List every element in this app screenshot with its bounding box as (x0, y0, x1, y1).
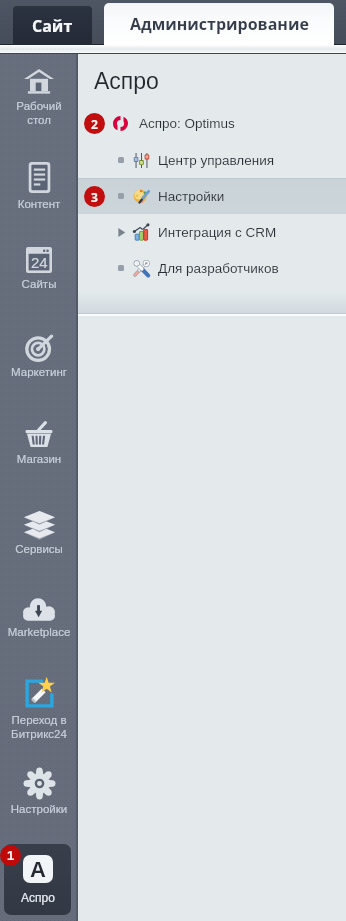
button[interactable]: Для разработчиков (78, 250, 346, 286)
button[interactable]: Администрирование (104, 3, 334, 45)
button[interactable]: Маркетинг (0, 334, 78, 379)
button[interactable]: Сайт (13, 6, 92, 45)
other: Рабочий стол (24, 68, 54, 95)
button[interactable]: Переход в Битрикс24 (0, 678, 78, 741)
staticText: Сайты (2, 278, 76, 291)
staticText: Администрирование (130, 13, 309, 35)
staticText: Для разработчиков (158, 261, 279, 276)
staticText: Рабочий стол (2, 100, 76, 127)
staticText: Сайт (32, 15, 73, 37)
button[interactable]: 2 (78, 105, 346, 141)
staticText: Маркетинг (2, 366, 76, 379)
button[interactable]: Настройки (0, 769, 78, 816)
other: Сервисы (24, 510, 55, 538)
staticText: Аспро: Optimus (139, 116, 235, 131)
button[interactable]: Сайты (0, 247, 78, 291)
button[interactable]: Центр управления (78, 142, 346, 178)
other: Маркетинг (26, 334, 53, 361)
button[interactable]: Marketplace (0, 598, 78, 639)
other: Переход в Битрикс24 (24, 678, 55, 709)
staticText: Контент (2, 198, 76, 211)
button[interactable]: Рабочий стол (0, 68, 78, 127)
staticText: Интеграция с CRM (158, 225, 277, 240)
staticText: A (30, 857, 46, 882)
button[interactable]: Сервисы (0, 510, 78, 556)
other: Настройки (25, 769, 54, 798)
button[interactable]: Интеграция с CRM (78, 214, 346, 250)
other: Контент (26, 162, 53, 193)
button[interactable]: A (4, 844, 71, 915)
other: Магазин (25, 421, 53, 448)
other: Marketplace (23, 598, 55, 621)
button[interactable]: Магазин (0, 421, 78, 466)
staticText: Сервисы (2, 543, 76, 556)
staticText: 2 (91, 116, 98, 132)
staticText: Центр управления (158, 153, 275, 168)
other: Сайты (26, 247, 52, 273)
staticText: Настройки (2, 803, 76, 816)
staticText: Аспро (94, 68, 159, 94)
staticText: 3 (91, 189, 98, 205)
button[interactable]: 3 (78, 178, 346, 214)
staticText: Аспро (21, 891, 55, 904)
staticText: Переход в Битрикс24 (2, 714, 76, 741)
button[interactable]: Контент (0, 162, 78, 211)
staticText: Marketplace (2, 626, 76, 639)
staticText: Магазин (2, 453, 76, 466)
staticText: 24 (31, 254, 48, 271)
staticText: 1 (7, 848, 15, 863)
staticText: Настройки (158, 189, 225, 204)
